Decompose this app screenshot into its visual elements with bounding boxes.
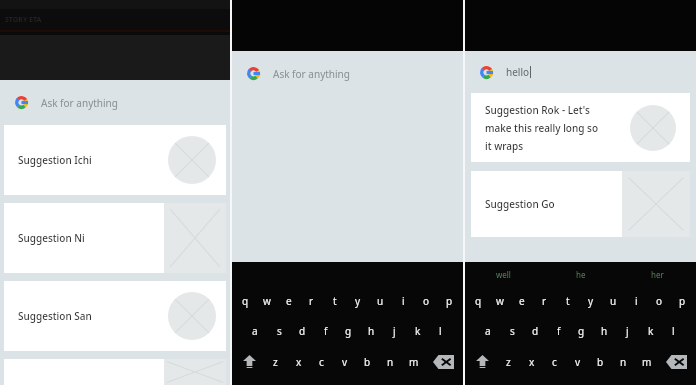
button[interactable]: her: [619, 262, 696, 286]
button[interactable]: o: [415, 286, 438, 316]
button[interactable]: Google: [465, 51, 696, 93]
button[interactable]: v: [333, 346, 356, 377]
staticText: f: [557, 324, 561, 338]
button[interactable]: a: [476, 316, 500, 346]
button[interactable]: m: [635, 346, 658, 377]
button[interactable]: e: [278, 286, 300, 316]
button[interactable]: e: [511, 286, 533, 316]
button[interactable]: Suggestion San: [4, 281, 226, 351]
staticText: s: [277, 324, 282, 338]
button[interactable]: Shift: [467, 346, 497, 377]
button[interactable]: r: [533, 286, 556, 316]
button[interactable]: f: [547, 316, 570, 346]
button[interactable]: Suggestion Ichi: [4, 125, 226, 195]
button[interactable]: q: [467, 286, 489, 316]
button[interactable]: p: [671, 286, 694, 316]
staticText: z: [506, 355, 511, 369]
button[interactable]: Google: [0, 80, 230, 125]
button[interactable]: z: [497, 346, 520, 377]
button[interactable]: k: [639, 316, 662, 346]
staticText: g: [578, 324, 585, 338]
button[interactable]: t: [323, 286, 346, 316]
staticText: o: [423, 294, 430, 308]
button[interactable]: h: [360, 316, 383, 346]
button[interactable]: k: [406, 316, 429, 346]
button[interactable]: j: [383, 316, 406, 346]
button[interactable]: j: [616, 316, 639, 346]
button[interactable]: o: [648, 286, 671, 316]
staticText: a: [252, 324, 258, 338]
button[interactable]: i: [625, 286, 648, 316]
staticText: i: [635, 294, 638, 308]
button[interactable]: a: [243, 316, 267, 346]
staticText: j: [626, 324, 629, 338]
button[interactable]: x: [520, 346, 543, 377]
button[interactable]: b: [356, 346, 379, 377]
button[interactable]: he: [542, 262, 619, 286]
staticText: Suggestion Rok - Let's: [485, 103, 590, 117]
staticText: l: [439, 324, 442, 338]
button[interactable]: u: [602, 286, 625, 316]
button[interactable]: Suggestion Ni: [4, 203, 226, 273]
button[interactable]: u: [369, 286, 392, 316]
button[interactable]: s: [500, 316, 524, 346]
staticText: m: [642, 355, 652, 369]
staticText: q: [242, 294, 249, 308]
button[interactable]: l: [429, 316, 452, 346]
button[interactable]: v: [566, 346, 589, 377]
button[interactable]: Backspace: [425, 346, 461, 377]
button[interactable]: g: [337, 316, 360, 346]
staticText: j: [393, 324, 396, 338]
staticText: g: [345, 324, 352, 338]
staticText: x: [296, 355, 302, 369]
button[interactable]: c: [543, 346, 566, 377]
button[interactable]: g: [570, 316, 593, 346]
staticText: w: [496, 294, 504, 308]
staticText: u: [610, 294, 617, 308]
staticText: m: [409, 355, 419, 369]
button[interactable]: r: [300, 286, 323, 316]
staticText: p: [446, 294, 453, 308]
staticText: well: [496, 269, 511, 280]
button[interactable]: w: [489, 286, 511, 316]
button[interactable]: Backspace: [658, 346, 694, 377]
button[interactable]: l: [662, 316, 685, 346]
button[interactable]: w: [256, 286, 278, 316]
button[interactable]: m: [402, 346, 425, 377]
button[interactable]: y: [346, 286, 369, 316]
button[interactable]: h: [593, 316, 616, 346]
button[interactable]: q: [234, 286, 256, 316]
button[interactable]: d: [291, 316, 314, 346]
button[interactable]: Shift: [234, 346, 264, 377]
staticText: c: [552, 355, 557, 369]
button[interactable]: t: [556, 286, 579, 316]
staticText: r: [309, 294, 314, 308]
staticText: Suggestion Ni: [18, 231, 85, 245]
button[interactable]: d: [524, 316, 547, 346]
button[interactable]: c: [310, 346, 333, 377]
button[interactable]: Google: [232, 51, 463, 96]
staticText: t: [566, 294, 570, 308]
button[interactable]: y: [579, 286, 602, 316]
button[interactable]: well: [465, 262, 542, 286]
button[interactable]: [4, 359, 226, 385]
button[interactable]: n: [379, 346, 402, 377]
button[interactable]: f: [314, 316, 337, 346]
staticText: d: [532, 324, 539, 338]
button[interactable]: x: [287, 346, 310, 377]
staticText: STORY ETA: [5, 15, 42, 25]
staticText: h: [368, 324, 375, 338]
button[interactable]: n: [612, 346, 635, 377]
staticText: Suggestion Ichi: [18, 153, 92, 167]
button[interactable]: Suggestion Go: [471, 171, 690, 237]
button[interactable]: p: [438, 286, 461, 316]
staticText: w: [263, 294, 271, 308]
staticText: y: [588, 294, 594, 308]
button[interactable]: b: [589, 346, 612, 377]
button[interactable]: z: [264, 346, 287, 377]
staticText: t: [333, 294, 337, 308]
staticText: z: [273, 355, 278, 369]
button[interactable]: i: [392, 286, 415, 316]
button[interactable]: Suggestion Rok - Let's: [471, 93, 690, 162]
button[interactable]: s: [267, 316, 291, 346]
